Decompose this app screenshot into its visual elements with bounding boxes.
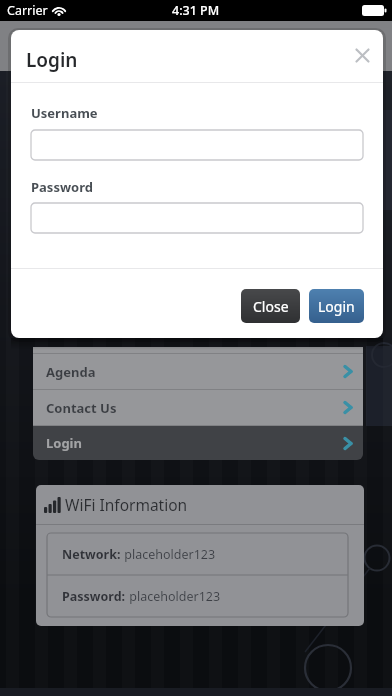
button[interactable]	[31, 203, 363, 233]
staticText: Username	[31, 104, 98, 122]
staticText: Login	[26, 47, 78, 73]
staticText: Agenda	[46, 363, 96, 381]
button[interactable]: Agenda	[33, 354, 363, 389]
staticText: Close	[253, 297, 289, 316]
button[interactable]: Contact Us	[33, 390, 363, 425]
button[interactable]: Login	[33, 426, 363, 460]
button[interactable]	[344, 40, 380, 70]
button[interactable]: Close	[241, 289, 300, 323]
staticText: Password:	[62, 588, 126, 605]
staticText: Carrier	[7, 2, 48, 19]
staticText: Contact Us	[46, 399, 117, 417]
staticText: Login	[46, 434, 82, 452]
button[interactable]	[31, 130, 363, 160]
staticText: placeholder123	[121, 546, 216, 563]
staticText: 4:31 PM	[172, 2, 220, 19]
staticText: placeholder123	[126, 588, 221, 605]
button[interactable]: Login	[309, 289, 364, 323]
staticText: Password	[31, 178, 93, 196]
staticText: WiFi Information	[65, 494, 188, 515]
staticText: Network:	[62, 546, 121, 563]
staticText: Login	[318, 297, 355, 316]
